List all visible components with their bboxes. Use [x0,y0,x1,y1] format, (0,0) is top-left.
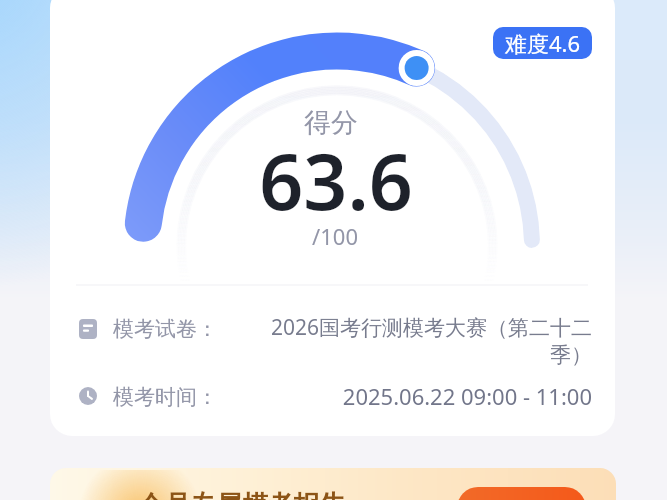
staticText: 模考时间： [113,384,218,410]
staticText: 63.6 [136,128,536,233]
staticText: 模考试卷： [113,316,218,342]
staticText: /100 [135,221,535,251]
button[interactable]: 会员专属模考报告 [50,468,616,500]
staticText: 会员专属模考报告 [138,489,346,500]
button[interactable]: View report [457,487,586,500]
staticText: 2025.06.22 09:00 - 11:00 [342,381,592,411]
staticText: 2026国考行测模考大赛（第二十二季） [268,313,592,368]
button[interactable]: 难度4.6 [493,27,592,59]
staticText: 难度4.6 [505,28,581,58]
staticText: 得分 [131,106,531,140]
